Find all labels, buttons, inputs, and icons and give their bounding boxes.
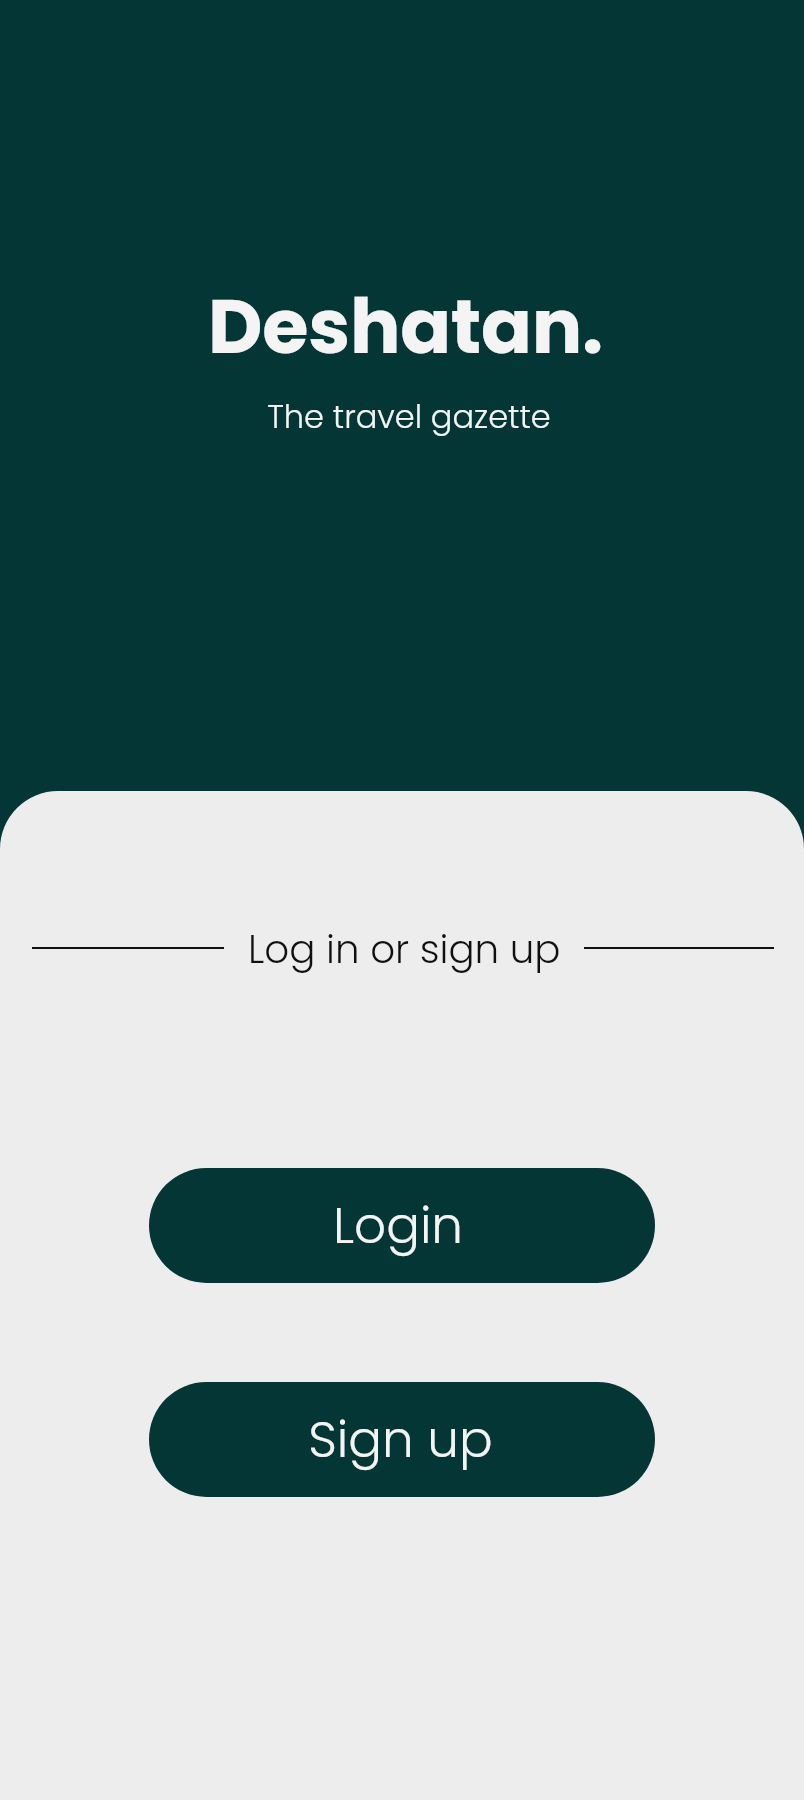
staticText: Login (333, 1191, 463, 1261)
staticText: Deshatan. (208, 274, 603, 379)
button[interactable]: Sign up (149, 1382, 655, 1497)
staticText: Sign up (308, 1405, 493, 1475)
staticText: The travel gazette (267, 394, 551, 439)
staticText: Log in or sign up (248, 922, 561, 976)
button[interactable]: Login (149, 1168, 655, 1283)
